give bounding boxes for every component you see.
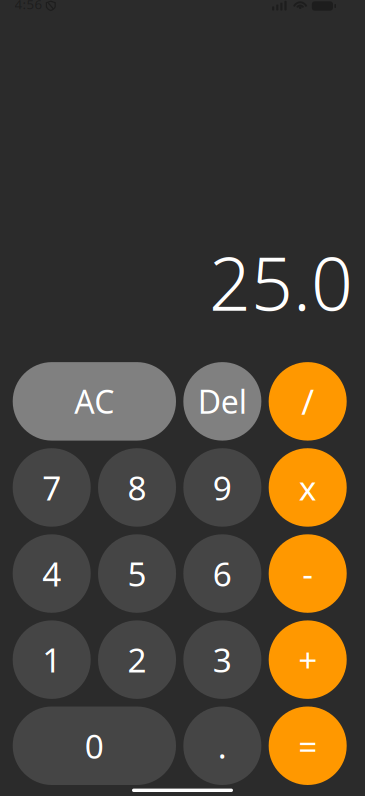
staticText: 0: [85, 724, 104, 768]
staticText: 4: [42, 551, 61, 596]
button[interactable]: +: [269, 620, 347, 699]
button[interactable]: 7: [13, 448, 91, 527]
staticText: 6: [213, 551, 232, 596]
staticText: Del: [198, 380, 247, 423]
staticText: 8: [127, 465, 146, 510]
staticText: 1: [42, 637, 61, 682]
button[interactable]: -: [269, 534, 347, 613]
button[interactable]: 4: [13, 534, 91, 613]
button[interactable]: 0: [13, 706, 176, 785]
staticText: 7: [42, 465, 61, 510]
staticText: /: [301, 378, 314, 424]
staticText: 3: [213, 637, 232, 682]
button[interactable]: 9: [183, 448, 261, 527]
button[interactable]: AC: [13, 362, 176, 441]
staticText: AC: [74, 380, 114, 423]
staticText: 4:56: [14, 0, 42, 13]
button[interactable]: 3: [183, 620, 261, 699]
button[interactable]: Del: [183, 362, 261, 441]
button[interactable]: 2: [98, 620, 176, 699]
button[interactable]: x: [269, 448, 347, 527]
button[interactable]: 1: [13, 620, 91, 699]
staticText: 9: [213, 465, 232, 510]
staticText: 25.0: [209, 234, 353, 331]
staticText: -: [302, 551, 313, 596]
staticText: 2: [127, 637, 146, 682]
button[interactable]: .: [183, 706, 261, 785]
button[interactable]: =: [269, 706, 347, 785]
button[interactable]: 5: [98, 534, 176, 613]
staticText: =: [298, 724, 317, 768]
button[interactable]: 8: [98, 448, 176, 527]
staticText: .: [218, 724, 227, 768]
staticText: 5: [127, 551, 146, 596]
button[interactable]: 6: [183, 534, 261, 613]
staticText: +: [298, 637, 317, 682]
button[interactable]: /: [269, 362, 347, 441]
staticText: x: [299, 465, 317, 510]
